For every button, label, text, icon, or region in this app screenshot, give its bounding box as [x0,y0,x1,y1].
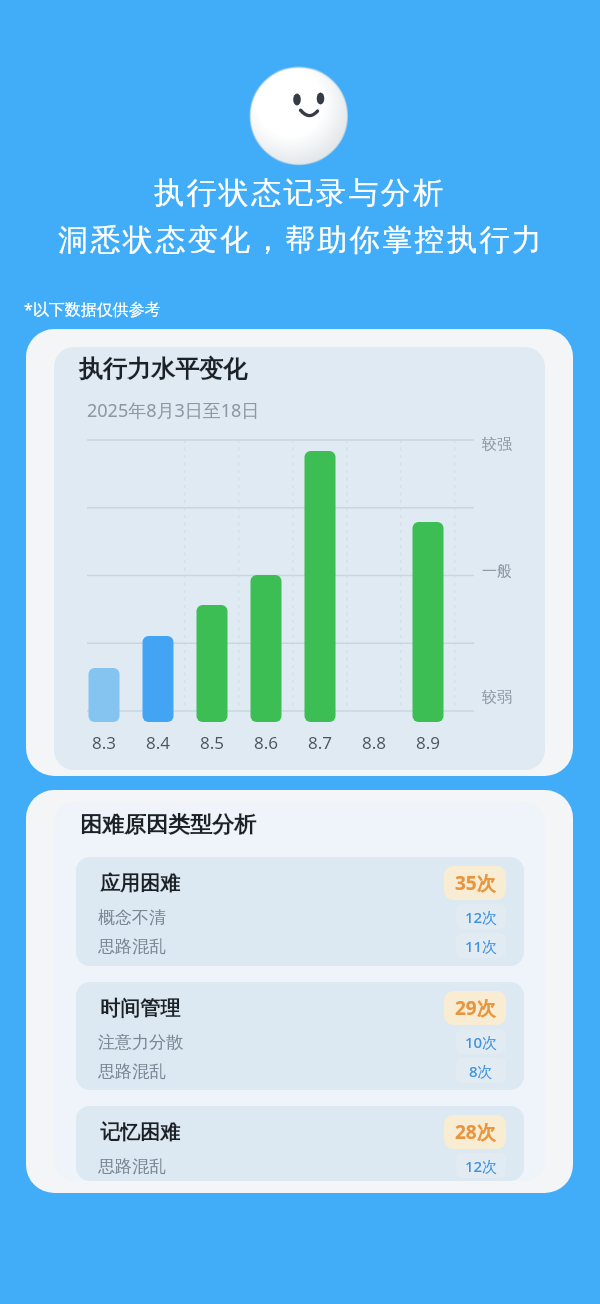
staticText: 思路混乱 [98,936,166,957]
staticText: 8.5 [200,731,225,754]
staticText: 8.8 [362,731,387,754]
staticText: 注意力分散 [98,1032,183,1053]
staticText: *以下数据仅供参考 [24,298,161,320]
staticText: 思路混乱 [98,1156,166,1177]
staticText: 12次 [465,907,498,927]
staticText: 思路混乱 [98,1061,166,1082]
button[interactable]: 应用困难 [76,857,524,966]
staticText: 概念不清 [98,907,166,928]
staticText: 记忆困难 [100,1120,180,1145]
staticText: 28次 [455,1119,496,1145]
staticText: 洞悉状态变化，帮助你掌控执行力 [57,221,543,259]
staticText: 35次 [455,870,496,896]
staticText: 10次 [465,1032,498,1052]
staticText: 应用困难 [100,871,180,896]
button[interactable]: 时间管理 [76,982,524,1090]
staticText: 较弱 [482,688,512,707]
staticText: 2025年8月3日至18日 [87,398,260,423]
staticText: 8.6 [254,731,279,754]
staticText: 时间管理 [100,996,180,1021]
staticText: 较强 [482,435,512,454]
staticText: 11次 [465,936,498,956]
button[interactable]: 记忆困难 [76,1106,524,1181]
staticText: 执行状态记录与分析 [154,174,446,212]
staticText: 8次 [469,1061,493,1081]
staticText: 29次 [455,995,496,1021]
staticText: 困难原因类型分析 [80,811,256,839]
staticText: 8.4 [146,731,171,754]
staticText: 8.3 [92,731,117,754]
staticText: 执行力水平变化 [79,354,247,384]
staticText: 一般 [482,562,512,581]
staticText: 8.9 [416,731,441,754]
staticText: 12次 [465,1156,498,1176]
staticText: 8.7 [308,731,333,754]
